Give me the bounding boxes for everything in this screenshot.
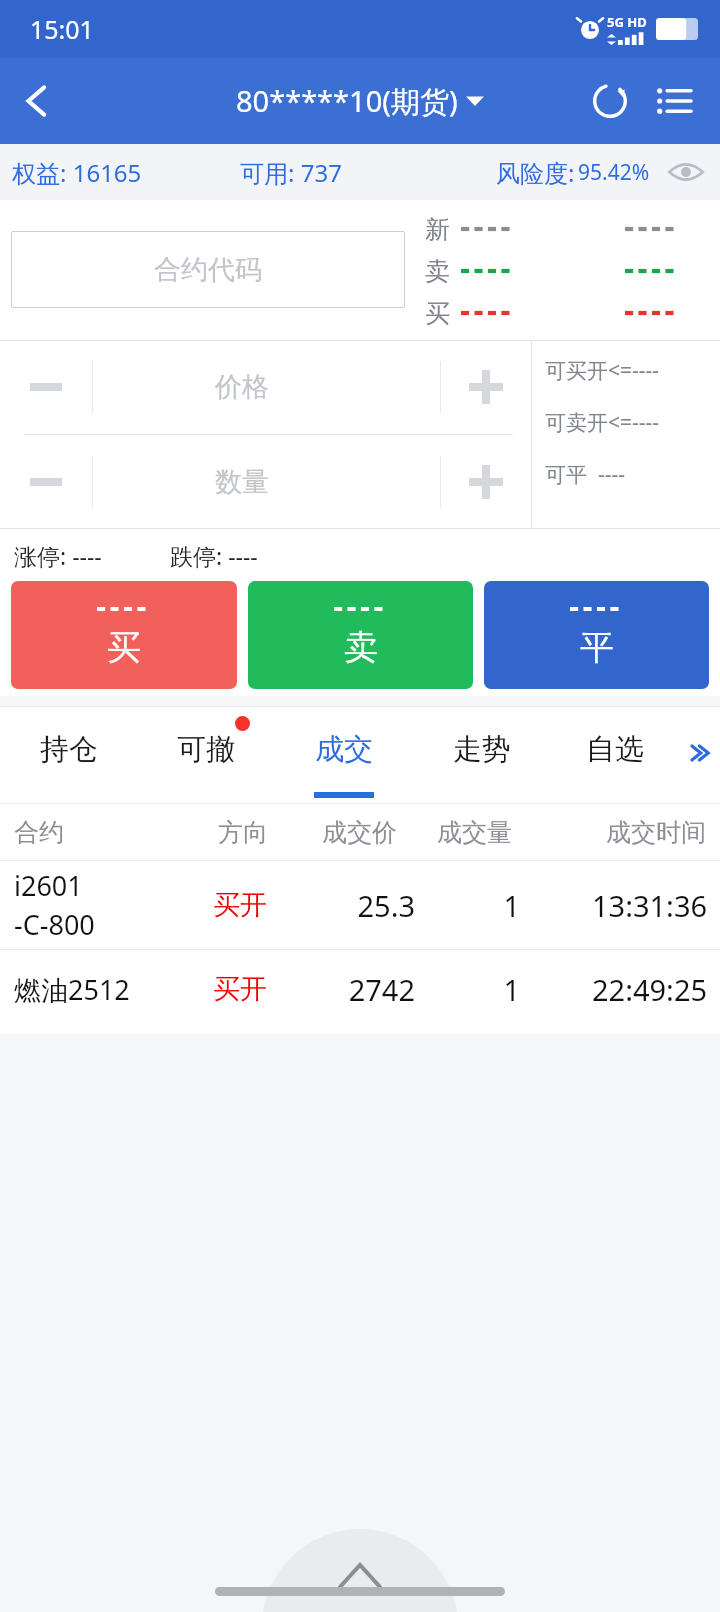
- button[interactable]: Decrease 数量: [0, 435, 92, 529]
- staticText: 平: [580, 626, 614, 669]
- button[interactable]: 新: [425, 208, 679, 250]
- staticText: 可撤: [177, 731, 235, 768]
- staticText: 买开: [213, 972, 267, 1006]
- button[interactable]: 自选: [551, 706, 678, 804]
- staticText: 成交时间: [606, 817, 706, 848]
- staticText: 持仓: [40, 731, 98, 768]
- staticText: i2601: [14, 867, 83, 904]
- button[interactable]: Menu: [642, 69, 706, 133]
- button[interactable]: 可卖开<=----: [545, 408, 660, 460]
- button[interactable]: Increase 价格: [441, 340, 531, 434]
- staticText: 卖: [344, 626, 378, 669]
- button[interactable]: 燃油2512: [0, 950, 720, 1028]
- staticText: 风险度:: [496, 156, 575, 189]
- button[interactable]: 卖: [425, 250, 679, 292]
- staticText: 新: [425, 214, 461, 245]
- button[interactable]: 买: [425, 292, 679, 334]
- button[interactable]: 可平 ----: [545, 460, 625, 512]
- button[interactable]: 持仓: [0, 706, 137, 804]
- staticText: 合约: [14, 817, 64, 848]
- staticText: 成交: [315, 731, 373, 768]
- staticText: 80*****10(期货): [236, 81, 458, 121]
- staticText: 买: [107, 626, 141, 669]
- staticText: 合约代码: [154, 253, 262, 287]
- staticText: 1: [430, 886, 520, 925]
- staticText: 2742: [325, 970, 415, 1009]
- staticText: 数量: [215, 465, 269, 499]
- button[interactable]: 成交: [275, 706, 413, 804]
- button[interactable]: 买: [11, 581, 237, 689]
- button[interactable]: 平: [484, 581, 709, 689]
- staticText: -C-800: [14, 906, 95, 943]
- staticText: 25.3: [325, 886, 415, 925]
- staticText: 成交价: [322, 817, 397, 848]
- staticText: 13:31:36: [592, 886, 708, 925]
- button[interactable]: Toggle visibility: [664, 150, 708, 194]
- button[interactable]: 走势: [413, 706, 551, 804]
- button[interactable]: 合约代码: [11, 231, 405, 308]
- staticText: 买开: [213, 888, 267, 922]
- button[interactable]: 卖: [248, 581, 473, 689]
- button[interactable]: 可买开<=----: [545, 356, 660, 408]
- staticText: 5G HD: [607, 13, 647, 31]
- button[interactable]: Back: [0, 63, 76, 139]
- button[interactable]: 可撤: [137, 706, 275, 804]
- staticText: 燃油2512: [14, 971, 130, 1008]
- staticText: 1: [430, 970, 520, 1009]
- button[interactable]: 可用: 737: [240, 156, 342, 189]
- button[interactable]: Increase 数量: [441, 435, 531, 529]
- staticText: 成交量: [437, 817, 512, 848]
- button[interactable]: i2601: [0, 861, 720, 949]
- button[interactable]: 权益: 16165: [12, 156, 142, 189]
- button[interactable]: More tabs: [678, 706, 720, 804]
- button[interactable]: Expand: [262, 1529, 458, 1599]
- staticText: 22:49:25: [592, 970, 708, 1009]
- staticText: 价格: [215, 370, 269, 404]
- button[interactable]: 跌停: ----: [170, 540, 258, 571]
- button[interactable]: Decrease 价格: [0, 340, 92, 434]
- staticText: 方向: [218, 817, 268, 848]
- staticText: 卖: [425, 256, 461, 287]
- staticText: 走势: [453, 731, 511, 768]
- staticText: 95.42%: [578, 158, 650, 187]
- button[interactable]: Refresh: [578, 69, 642, 133]
- button[interactable]: 80*****10(期货): [236, 81, 484, 121]
- staticText: 自选: [586, 731, 644, 768]
- staticText: 15:01: [30, 12, 94, 46]
- staticText: 买: [425, 298, 461, 329]
- button[interactable]: 涨停: ----: [14, 540, 102, 571]
